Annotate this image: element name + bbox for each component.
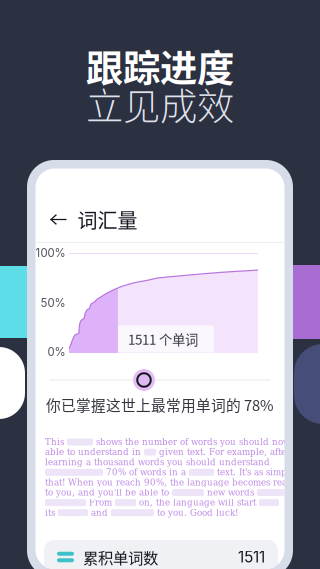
staticText: to you. Good luck! [154, 508, 238, 518]
staticText: to you, and you'll be able to [45, 487, 172, 498]
staticText: new words [204, 487, 257, 498]
staticText: This [45, 437, 67, 447]
staticText: 1511 个单词 [128, 329, 198, 349]
button[interactable]: 词汇量 [35, 168, 284, 214]
staticText: 你已掌握这世上最常用单词的 78% [46, 394, 274, 415]
staticText: 词汇量 [77, 205, 137, 234]
staticText: 1511 [238, 548, 265, 566]
staticText: 70% of words in a [103, 467, 189, 477]
staticText: learning a thousand words you should und… [45, 457, 270, 467]
staticText: 立见成效 [86, 77, 234, 131]
staticText: 50% [40, 296, 65, 310]
button[interactable]: 累积单词数 [35, 168, 269, 202]
staticText: text. It's as simple as [214, 467, 307, 477]
staticText: that! When you reach 90%, the language b… [45, 477, 320, 487]
staticText: its [45, 508, 58, 518]
staticText: able to understand in [45, 447, 144, 457]
staticText: 0% [47, 345, 65, 359]
staticText: and [88, 508, 111, 518]
staticText: given text. For example, after [156, 447, 290, 457]
staticText: 跟踪进度 [86, 39, 234, 93]
staticText: 累积单词数 [83, 546, 158, 568]
staticText: shows the number of words you should now… [93, 437, 304, 447]
staticText: From [86, 498, 115, 508]
staticText: 100% [35, 246, 65, 260]
staticText: on, the language will start [136, 498, 259, 508]
